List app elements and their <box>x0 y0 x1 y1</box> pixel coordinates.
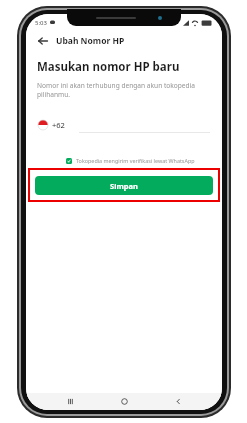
button[interactable]: Tokopedia mengirim verifikasi lewat What… <box>66 157 208 164</box>
staticText: 5:03 <box>35 19 47 27</box>
staticText: Masukan nomor HP baru <box>37 59 180 75</box>
button[interactable]: +62 <box>38 120 65 130</box>
button[interactable] <box>79 117 210 133</box>
staticText: Simpan <box>110 181 138 191</box>
staticText: Ubah Nomor HP <box>56 35 125 47</box>
button[interactable]: Home <box>114 393 134 410</box>
button[interactable]: Recent apps <box>60 393 80 410</box>
staticText: Nomor ini akan terhubung dengan akun tok… <box>37 81 196 99</box>
staticText: +62 <box>52 120 65 130</box>
button[interactable]: Back <box>168 393 188 410</box>
button[interactable]: Simpan <box>35 176 213 195</box>
button[interactable]: Back <box>35 33 51 49</box>
staticText: Tokopedia mengirim verifikasi lewat What… <box>76 157 195 164</box>
